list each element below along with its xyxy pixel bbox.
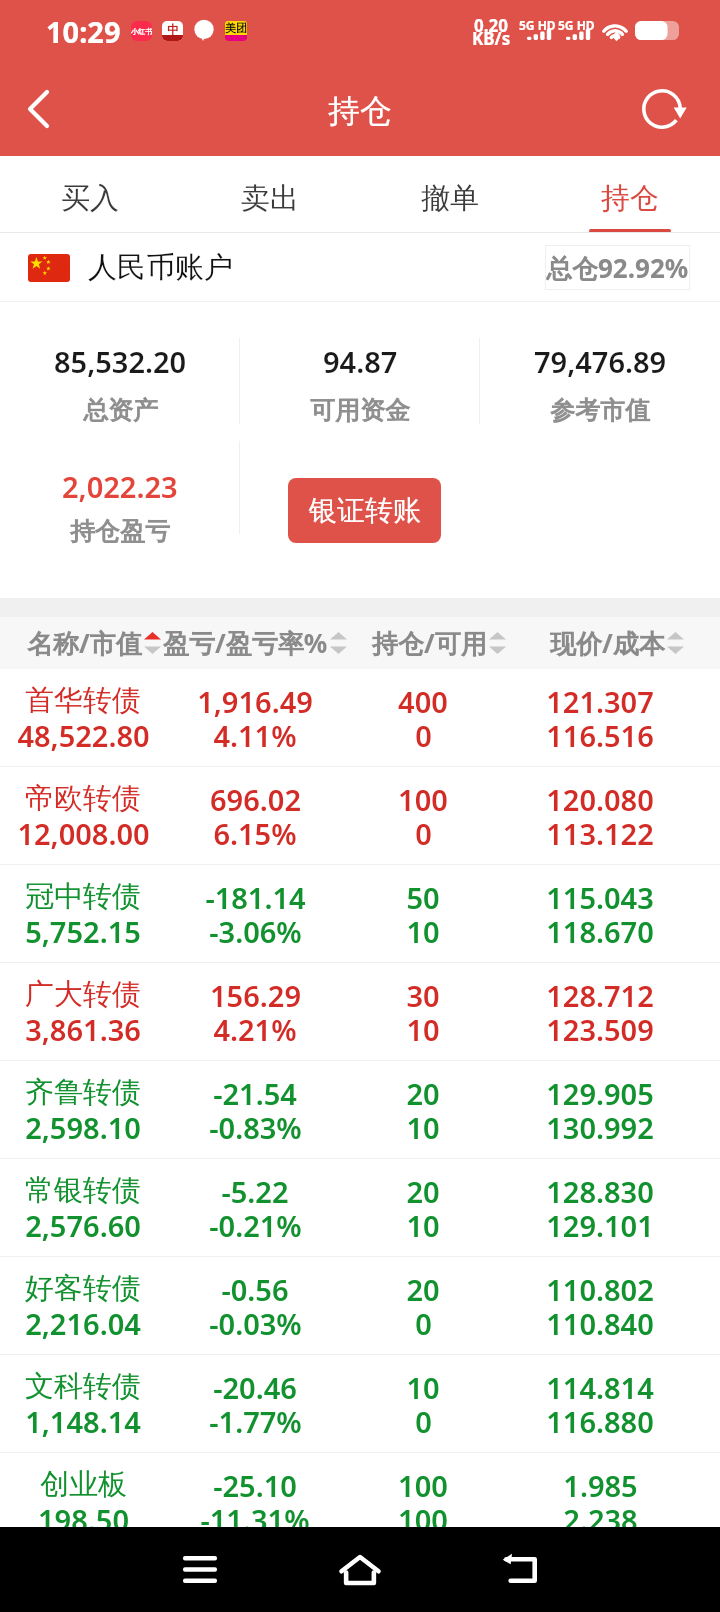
- button[interactable]: 齐鲁转债: [0, 1061, 720, 1159]
- staticText: 中: [167, 22, 179, 37]
- staticText: 1,916.49: [197, 682, 313, 721]
- staticText: 123.509: [546, 1010, 654, 1049]
- staticText: 116.516: [546, 716, 654, 755]
- staticText: 128.830: [546, 1172, 654, 1211]
- button[interactable]: 总仓92.92%: [545, 245, 690, 290]
- staticText: 2,598.10: [25, 1108, 141, 1147]
- staticText: 121.307: [546, 682, 654, 721]
- staticText: 5G HD: [558, 17, 595, 33]
- button[interactable]: Refresh: [632, 79, 692, 139]
- staticText: 美团: [225, 21, 247, 35]
- staticText: -1.77%: [209, 1402, 302, 1441]
- staticText: 4.11%: [213, 716, 297, 755]
- staticText: 50: [406, 878, 440, 917]
- staticText: 12,008.00: [17, 814, 150, 853]
- staticText: 3,861.36: [25, 1010, 141, 1049]
- staticText: 盈亏/盈亏率%: [163, 625, 328, 661]
- staticText: 人民币账户: [88, 249, 233, 286]
- staticText: 85,532.20: [54, 342, 187, 381]
- staticText: 5G HD: [519, 17, 556, 33]
- button[interactable]: Back: [485, 1527, 555, 1612]
- staticText: 0: [415, 814, 432, 853]
- staticText: 2,576.60: [25, 1206, 141, 1245]
- staticText: 好客转债: [25, 1270, 141, 1307]
- button[interactable]: 买入: [0, 156, 180, 233]
- staticText: 20: [406, 1270, 440, 1309]
- button[interactable]: 卖出: [180, 156, 360, 233]
- staticText: 100: [398, 1466, 448, 1505]
- staticText: 文科转债: [25, 1368, 141, 1405]
- button[interactable]: 银证转账: [288, 478, 441, 543]
- staticText: 48,522.80: [17, 716, 150, 755]
- staticText: -5.22: [221, 1172, 289, 1211]
- staticText: 113.122: [546, 814, 654, 853]
- staticText: 常银转债: [25, 1172, 141, 1209]
- button[interactable]: Home: [325, 1527, 395, 1612]
- staticText: 198.50: [38, 1500, 129, 1539]
- staticText: 10: [406, 1010, 440, 1049]
- staticText: 6.15%: [213, 814, 297, 853]
- staticText: 名称/市值: [27, 625, 142, 661]
- staticText: 2,216.04: [25, 1304, 141, 1343]
- staticText: 帝欧转债: [25, 780, 141, 817]
- staticText: 持仓/可用: [372, 625, 487, 661]
- button[interactable]: 冠中转债: [0, 865, 720, 963]
- staticText: 齐鲁转债: [25, 1074, 141, 1111]
- staticText: 2,022.23: [62, 467, 178, 506]
- staticText: 可用资金: [310, 395, 410, 426]
- staticText: -0.03%: [209, 1304, 302, 1343]
- staticText: 1,148.14: [25, 1402, 141, 1441]
- staticText: 卖出: [241, 180, 299, 217]
- staticText: 114.814: [546, 1368, 654, 1407]
- staticText: 冠中转债: [25, 878, 141, 915]
- staticText: 129.101: [546, 1206, 654, 1245]
- staticText: 130.992: [546, 1108, 654, 1147]
- staticText: 20: [406, 1172, 440, 1211]
- staticText: 156.29: [210, 976, 301, 1015]
- button[interactable]: 撤单: [360, 156, 540, 233]
- staticText: -21.54: [213, 1074, 297, 1113]
- staticText: 20: [406, 1074, 440, 1113]
- staticText: 0: [415, 716, 432, 755]
- staticText: 广大转债: [25, 976, 141, 1013]
- staticText: 首华转债: [25, 682, 141, 719]
- staticText: 2.238: [563, 1500, 638, 1539]
- staticText: 128.712: [546, 976, 654, 1015]
- staticText: -11.31%: [200, 1500, 310, 1539]
- button[interactable]: 首华转债: [0, 669, 720, 767]
- staticText: 0: [415, 1304, 432, 1343]
- button[interactable]: 创业板: [0, 1453, 720, 1551]
- staticText: 10: [406, 1368, 440, 1407]
- button[interactable]: Back: [8, 62, 68, 156]
- button[interactable]: 广大转债: [0, 963, 720, 1061]
- staticText: -0.83%: [209, 1108, 302, 1147]
- staticText: 总资产: [83, 395, 158, 426]
- staticText: 4.21%: [213, 1010, 297, 1049]
- staticText: 118.670: [546, 912, 654, 951]
- staticText: 30: [406, 976, 440, 1015]
- button[interactable]: 常银转债: [0, 1159, 720, 1257]
- staticText: 持仓: [328, 91, 392, 131]
- staticText: -20.46: [213, 1368, 297, 1407]
- staticText: 参考市值: [550, 395, 650, 426]
- staticText: 10: [406, 1108, 440, 1147]
- staticText: 10: [406, 912, 440, 951]
- button[interactable]: 文科转债: [0, 1355, 720, 1453]
- button[interactable]: 科创50: [0, 1551, 720, 1612]
- staticText: -0.56: [221, 1270, 289, 1309]
- staticText: 买入: [61, 180, 119, 217]
- staticText: 120.080: [546, 780, 654, 819]
- staticText: KB/s: [472, 27, 511, 50]
- button[interactable]: 帝欧转债: [0, 767, 720, 865]
- button[interactable]: 持仓: [540, 156, 720, 233]
- button[interactable]: 好客转债: [0, 1257, 720, 1355]
- staticText: 94.87: [323, 342, 398, 381]
- staticText: 现价/成本: [550, 625, 665, 661]
- button[interactable]: Recents: [165, 1527, 235, 1612]
- staticText: 10: [406, 1206, 440, 1245]
